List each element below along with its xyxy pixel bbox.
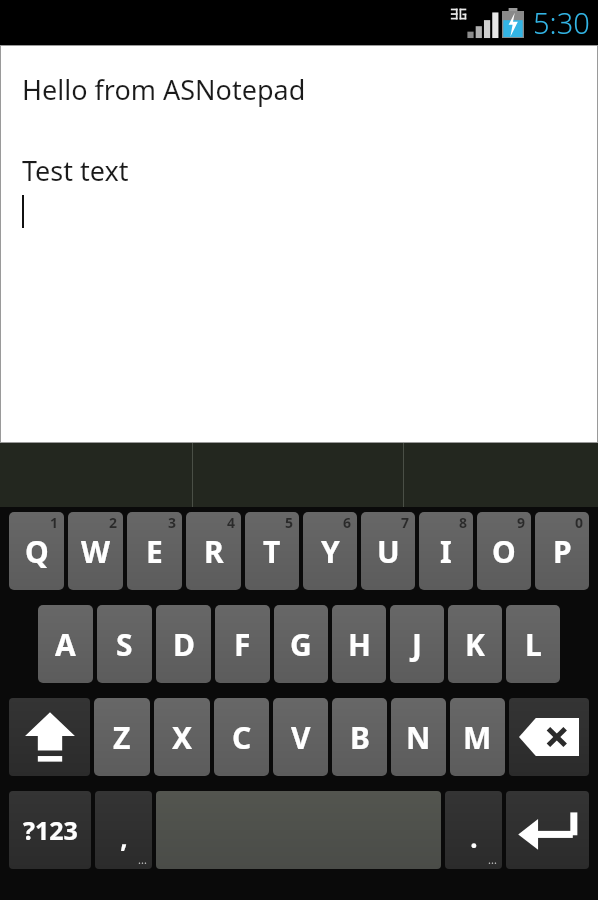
staticText: 3	[168, 513, 177, 532]
staticText: Z	[113, 717, 131, 758]
staticText: W	[81, 531, 111, 572]
button[interactable]: Enter	[506, 791, 589, 869]
staticText: O	[492, 531, 516, 572]
staticText: L	[525, 624, 542, 665]
staticText: 6	[343, 513, 352, 532]
button[interactable]: Y	[303, 512, 357, 590]
staticText: Hello from ASNotepad	[22, 71, 306, 108]
staticText: P	[553, 531, 572, 572]
button[interactable]: ,	[95, 791, 152, 869]
button[interactable]: H	[332, 605, 386, 683]
button[interactable]: N	[391, 698, 446, 776]
button[interactable]: D	[156, 605, 211, 683]
staticText: E	[146, 531, 163, 572]
staticText: 5:30	[533, 3, 590, 42]
button[interactable]: .	[445, 791, 502, 869]
staticText: B	[350, 717, 370, 758]
button[interactable]: T	[245, 512, 299, 590]
staticText: Y	[321, 531, 340, 572]
staticText: K	[465, 624, 485, 665]
staticText: D	[173, 624, 195, 665]
button[interactable]: X	[154, 698, 210, 776]
staticText: F	[234, 624, 251, 665]
button[interactable]: Shift	[9, 698, 90, 776]
staticText: V	[291, 717, 311, 758]
button[interactable]: R	[186, 512, 241, 590]
staticText: I	[440, 531, 452, 572]
staticText: 4	[227, 513, 236, 532]
button[interactable]: K	[448, 605, 502, 683]
button[interactable]: B	[332, 698, 387, 776]
button[interactable]: V	[273, 698, 328, 776]
staticText: X	[172, 717, 193, 758]
button[interactable]: L	[506, 605, 560, 683]
staticText: 1	[50, 513, 59, 532]
button[interactable]: Q	[9, 512, 64, 590]
button[interactable]: Delete	[509, 698, 589, 776]
staticText: 2	[109, 513, 118, 532]
staticText: 8	[459, 513, 468, 532]
staticText: R	[204, 531, 224, 572]
staticText: ?123	[23, 813, 78, 847]
staticText: N	[406, 717, 431, 758]
staticText: H	[348, 624, 371, 665]
staticText: C	[232, 717, 252, 758]
staticText: Q	[25, 531, 49, 572]
button[interactable]: C	[214, 698, 269, 776]
button[interactable]: F	[215, 605, 270, 683]
button[interactable]: E	[127, 512, 182, 590]
button[interactable]: J	[390, 605, 444, 683]
button[interactable]: I	[419, 512, 473, 590]
staticText: ...	[488, 852, 497, 867]
button[interactable]: Z	[94, 698, 150, 776]
staticText: .	[470, 820, 478, 855]
button[interactable]: Hello from ASNotepad	[0, 45, 598, 443]
button[interactable]: M	[450, 698, 505, 776]
button[interactable]: ?123	[9, 791, 91, 869]
staticText: 5	[285, 513, 294, 532]
staticText: 7	[401, 513, 410, 532]
staticText: G	[290, 624, 312, 665]
staticText: U	[377, 531, 400, 572]
staticText: ...	[138, 852, 147, 867]
staticText: S	[116, 624, 133, 665]
staticText: ,	[120, 820, 128, 855]
button[interactable]: S	[97, 605, 152, 683]
button[interactable]: W	[68, 512, 123, 590]
staticText: 9	[517, 513, 526, 532]
staticText: 0	[575, 513, 584, 532]
button[interactable]: G	[274, 605, 328, 683]
staticText: Test text	[22, 152, 129, 189]
button[interactable]: O	[477, 512, 531, 590]
staticText: M	[463, 717, 492, 758]
button[interactable]: U	[361, 512, 415, 590]
button[interactable]: P	[535, 512, 589, 590]
staticText: J	[412, 624, 422, 665]
button[interactable]: A	[38, 605, 93, 683]
staticText: A	[55, 624, 76, 665]
staticText: T	[263, 531, 281, 572]
